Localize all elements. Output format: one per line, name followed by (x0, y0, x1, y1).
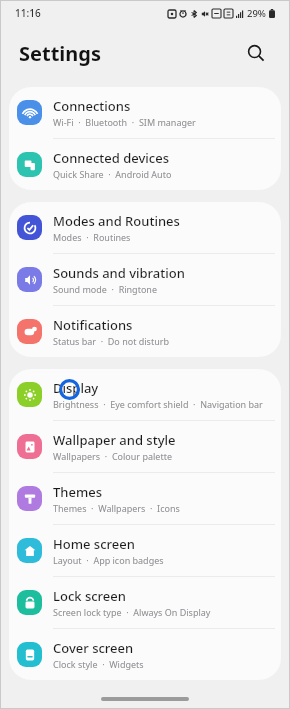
button[interactable]: Themes (9, 473, 281, 524)
staticText: 29% (247, 7, 266, 20)
staticText: Cover screen (53, 639, 134, 657)
staticText: Wallpaper and style (53, 431, 176, 449)
button[interactable]: Connected devices (9, 139, 281, 190)
staticText: Sounds and vibration (53, 264, 185, 282)
staticText: 11:16 (15, 6, 41, 20)
staticText: Quick Share · Android Auto (53, 168, 172, 180)
staticText: Connections (53, 97, 131, 115)
staticText: Screen lock type · Always On Display (53, 606, 211, 618)
button[interactable]: Search (241, 38, 271, 68)
button[interactable]: Modes and Routines (9, 202, 281, 253)
staticText: Wi-Fi · Bluetooth · SIM manager (53, 116, 196, 128)
staticText: Notifications (53, 316, 133, 334)
staticText: Themes (53, 483, 103, 501)
staticText: Display (53, 379, 99, 397)
staticText: Connected devices (53, 149, 170, 167)
button[interactable]: Notifications (9, 306, 281, 357)
staticText: Status bar · Do not disturb (53, 335, 169, 347)
staticText: Lock screen (53, 587, 126, 605)
staticText: Themes · Wallpapers · Icons (53, 502, 180, 514)
staticText: Wallpapers · Colour palette (53, 450, 172, 462)
staticText: Settings (19, 40, 101, 67)
button[interactable]: Sounds and vibration (9, 254, 281, 305)
button[interactable]: Cover screen (9, 629, 281, 680)
staticText: Layout · App icon badges (53, 554, 164, 566)
button[interactable]: Home screen (9, 525, 281, 576)
button[interactable]: Connections (9, 87, 281, 138)
staticText: Modes · Routines (53, 231, 131, 243)
staticText: Modes and Routines (53, 212, 180, 230)
staticText: Sound mode · Ringtone (53, 283, 157, 295)
staticText: Clock style · Widgets (53, 658, 144, 670)
button[interactable]: Display (9, 369, 281, 420)
button[interactable]: Lock screen (9, 577, 281, 628)
staticText: Home screen (53, 535, 135, 553)
staticText: Brightness · Eye comfort shield · Naviga… (53, 398, 263, 410)
button[interactable]: Wallpaper and style (9, 421, 281, 472)
